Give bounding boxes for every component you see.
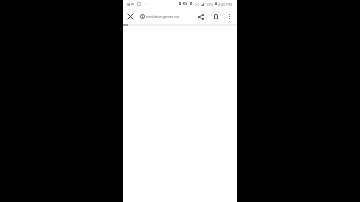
- staticText: 4:40 PM: [218, 2, 232, 7]
- button[interactable]: More options: [224, 11, 235, 22]
- button[interactable]: Close: [125, 11, 136, 22]
- staticText: emulationgames.net: [146, 14, 180, 19]
- button[interactable]: Bookmark: [210, 11, 221, 22]
- staticText: 13%: [206, 2, 214, 7]
- button[interactable]: emulationgames.net: [137, 9, 195, 24]
- button[interactable]: Share: [195, 11, 206, 22]
